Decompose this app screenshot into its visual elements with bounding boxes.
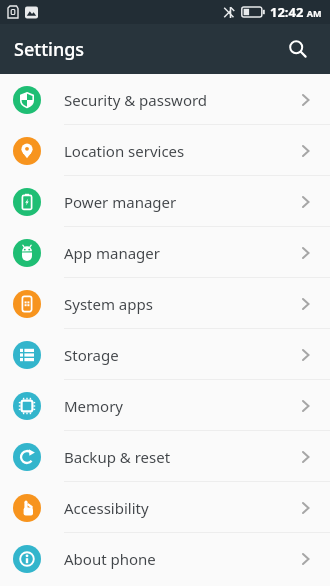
staticText: Power manager bbox=[64, 192, 177, 212]
staticText: Security & password bbox=[64, 90, 208, 110]
button[interactable]: Accessibility bbox=[0, 482, 330, 533]
button[interactable]: System apps bbox=[0, 278, 330, 329]
button[interactable]: Security & password bbox=[0, 74, 330, 125]
staticText: App manager bbox=[64, 243, 160, 263]
button[interactable]: Power manager bbox=[0, 176, 330, 227]
button[interactable]: Memory bbox=[0, 380, 330, 431]
staticText: Location services bbox=[64, 141, 185, 161]
staticText: Backup & reset bbox=[64, 447, 171, 467]
button[interactable]: About phone bbox=[0, 533, 330, 584]
staticText: About phone bbox=[64, 549, 156, 569]
button[interactable]: Location services bbox=[0, 125, 330, 176]
staticText: 12:42 AM bbox=[270, 3, 322, 21]
staticText: Storage bbox=[64, 345, 119, 365]
button[interactable]: Backup & reset bbox=[0, 431, 330, 482]
button[interactable]: Storage bbox=[0, 329, 330, 380]
button[interactable]: App manager bbox=[0, 227, 330, 278]
button[interactable] bbox=[276, 27, 320, 71]
staticText: Accessibility bbox=[64, 498, 149, 518]
staticText: System apps bbox=[64, 294, 153, 314]
staticText: Settings bbox=[14, 37, 85, 62]
staticText: Memory bbox=[64, 396, 124, 416]
